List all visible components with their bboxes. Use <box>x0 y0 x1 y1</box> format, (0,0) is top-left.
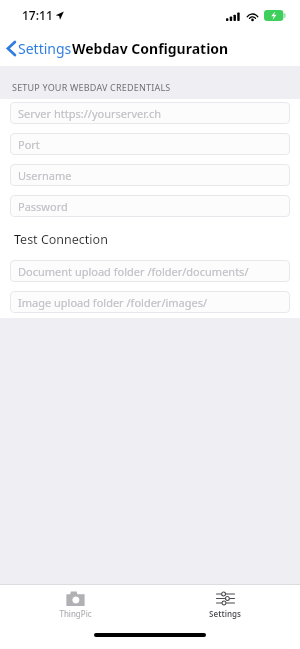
staticText: Port <box>18 137 40 152</box>
staticText: Server https://yourserver.ch <box>18 106 162 121</box>
button[interactable]: Settings tab <box>150 588 300 622</box>
staticText: Settings <box>209 608 241 619</box>
staticText: SETUP YOUR WEBDAV CREDENTIALS <box>12 81 171 93</box>
staticText: Username <box>18 168 72 183</box>
button[interactable]: Port <box>10 133 290 155</box>
staticText: Settings <box>18 39 72 58</box>
button[interactable]: Image upload folder /folder/images/ <box>10 291 290 313</box>
staticText: Image upload folder /folder/images/ <box>18 295 208 310</box>
staticText: 17:11 <box>22 7 53 23</box>
button[interactable]: Username <box>10 164 290 186</box>
staticText: Document upload folder /folder/documents… <box>18 264 249 279</box>
staticText: Password <box>18 199 68 214</box>
button[interactable]: Password <box>10 195 290 217</box>
button[interactable]: Server https://yourserver.ch <box>10 102 290 124</box>
staticText: Webdav Configuration <box>72 39 229 58</box>
staticText: Test Connection <box>14 231 108 248</box>
button[interactable]: Test Connection <box>0 225 300 254</box>
button[interactable]: Settings <box>0 35 80 62</box>
button[interactable]: Document upload folder /folder/documents… <box>10 260 290 282</box>
staticText: ThingPic <box>59 608 92 619</box>
button[interactable]: ThingPic tab <box>0 588 150 622</box>
